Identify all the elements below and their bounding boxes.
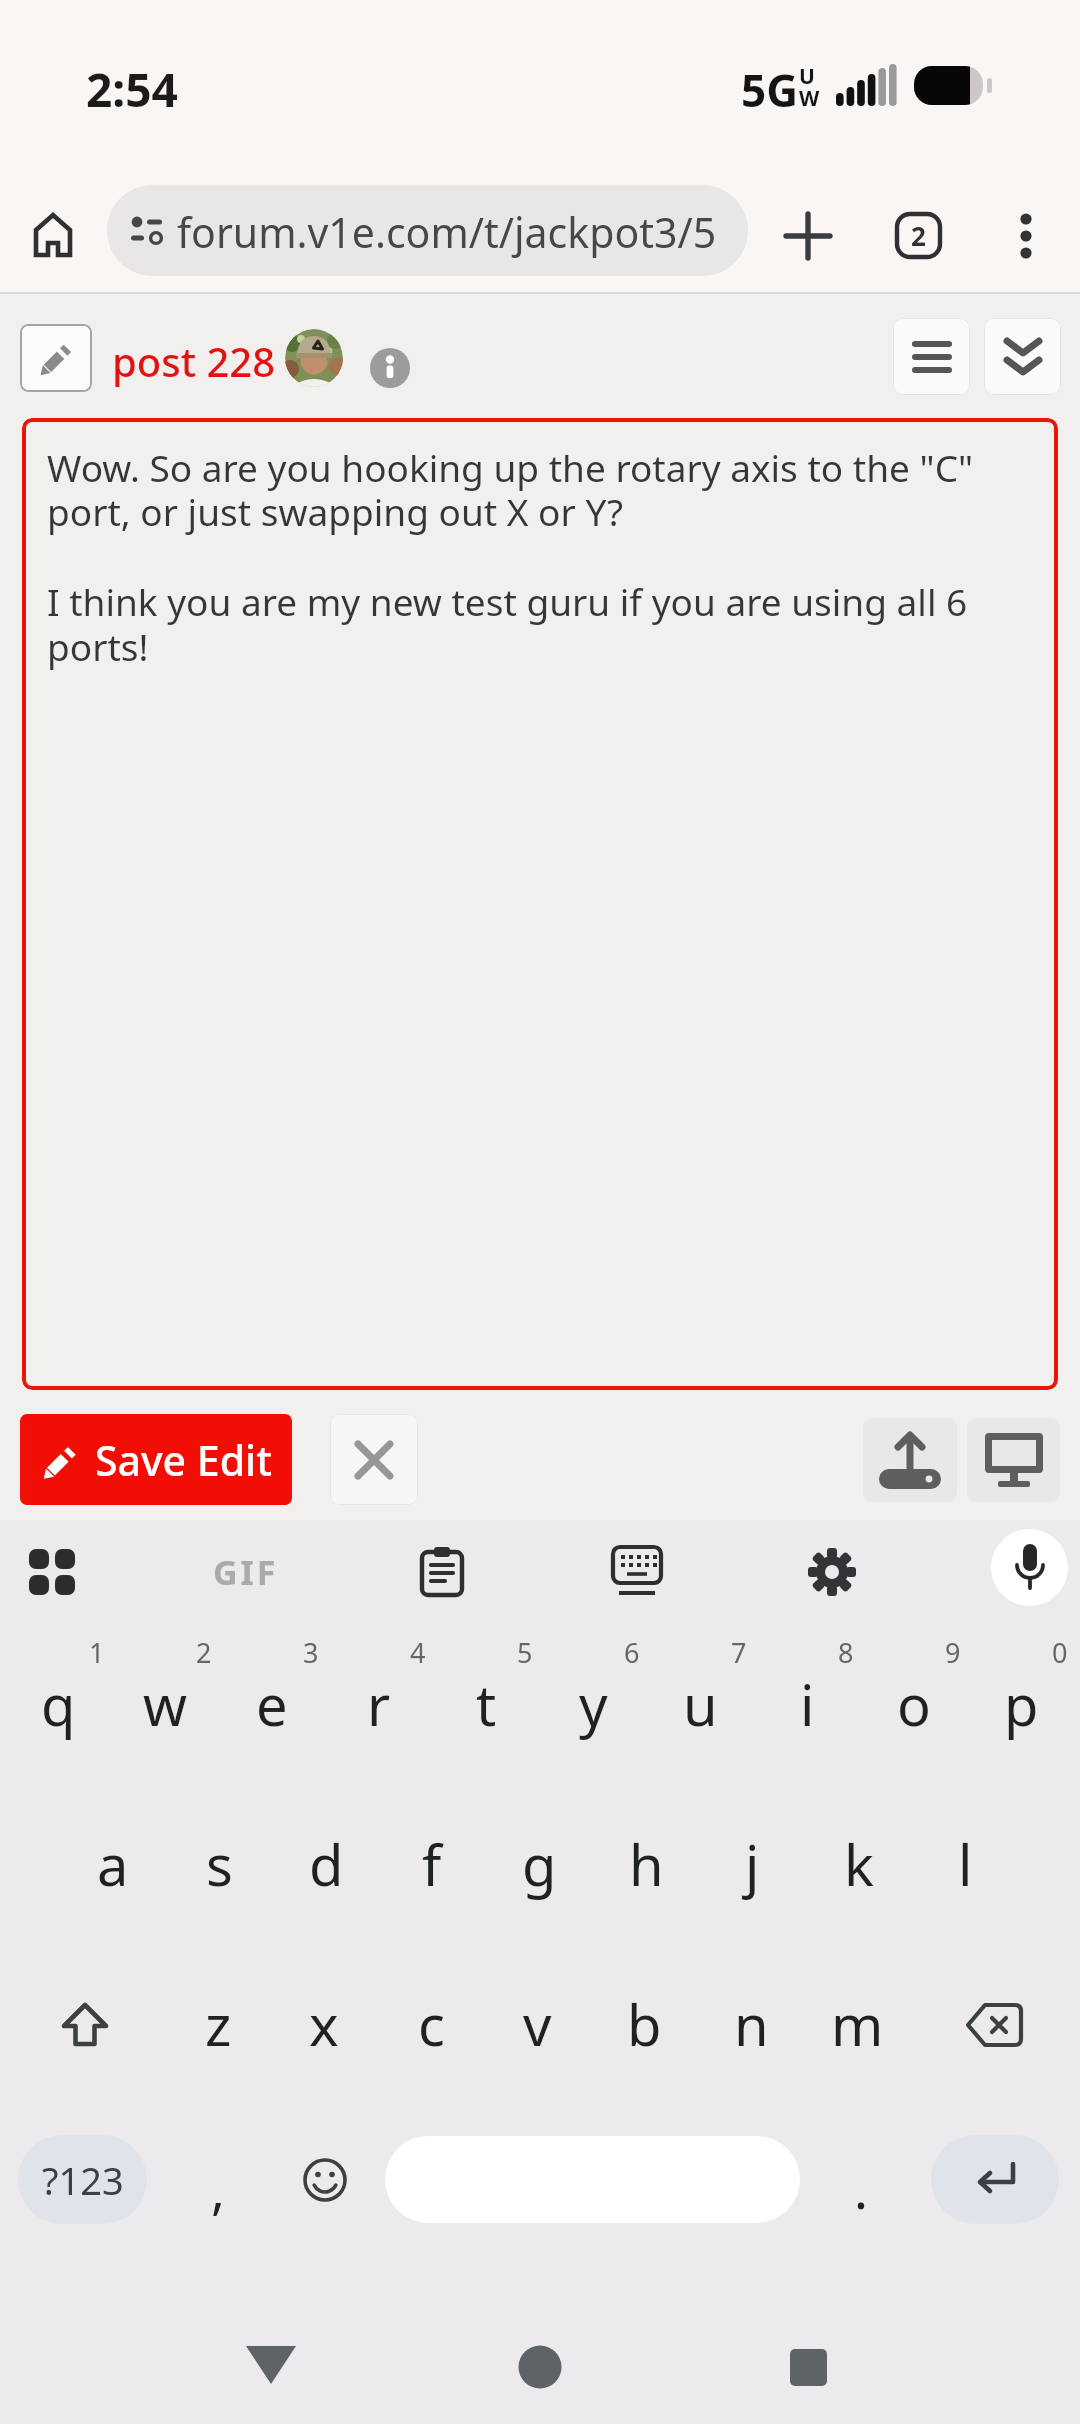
staticText: s bbox=[206, 1826, 233, 1902]
button[interactable]: h bbox=[592, 1808, 700, 1920]
button[interactable]: v bbox=[483, 1968, 591, 2080]
button[interactable]: o bbox=[860, 1648, 968, 1760]
button[interactable]: b bbox=[590, 1968, 698, 2080]
button[interactable]: l bbox=[911, 1808, 1019, 1920]
button[interactable] bbox=[784, 212, 832, 260]
staticText: t bbox=[476, 1666, 497, 1742]
button[interactable] bbox=[946, 1982, 1042, 2068]
button[interactable]: q bbox=[4, 1648, 112, 1760]
button[interactable]: Save Edit bbox=[20, 1414, 292, 1505]
button[interactable]: w bbox=[111, 1648, 219, 1760]
staticText: u bbox=[683, 1666, 718, 1742]
staticText: e bbox=[256, 1666, 288, 1742]
staticText: Wow. So are you hooking up the rotary ax… bbox=[47, 442, 974, 672]
button[interactable] bbox=[991, 1529, 1068, 1606]
staticText: k bbox=[844, 1826, 874, 1902]
staticText: 7 bbox=[731, 1634, 747, 1671]
button[interactable] bbox=[518, 2345, 562, 2389]
staticText: 8 bbox=[838, 1634, 854, 1671]
button[interactable] bbox=[863, 1418, 957, 1502]
staticText: 2 bbox=[911, 218, 926, 253]
button[interactable] bbox=[20, 324, 92, 392]
staticText: w bbox=[143, 1666, 188, 1742]
staticText: p bbox=[1004, 1666, 1039, 1742]
button[interactable]: t bbox=[432, 1648, 540, 1760]
staticText: 3 bbox=[303, 1634, 319, 1671]
button[interactable] bbox=[385, 2136, 800, 2223]
button[interactable]: 2 bbox=[895, 212, 942, 259]
staticText: q bbox=[41, 1666, 76, 1742]
staticText: , bbox=[211, 2153, 225, 2224]
staticText: m bbox=[831, 1986, 884, 2062]
button[interactable]: forum.v1e.com/t/jackpot3/5 bbox=[107, 185, 748, 276]
button[interactable]: n bbox=[697, 1968, 805, 2080]
button[interactable] bbox=[967, 1418, 1060, 1502]
button[interactable]: f bbox=[378, 1808, 486, 1920]
staticText: c bbox=[418, 1986, 445, 2062]
button[interactable]: c bbox=[377, 1968, 485, 2080]
staticText: 2:54 bbox=[86, 58, 178, 121]
staticText: . bbox=[854, 2153, 868, 2224]
button[interactable]: g bbox=[485, 1808, 593, 1920]
button[interactable] bbox=[285, 329, 343, 387]
staticText: Save Edit bbox=[95, 1432, 272, 1488]
button[interactable] bbox=[330, 1414, 418, 1505]
button[interactable]: s bbox=[165, 1808, 273, 1920]
staticText: x bbox=[309, 1986, 339, 2062]
staticText: 5 bbox=[517, 1634, 533, 1671]
staticText: 5G bbox=[741, 60, 799, 120]
button[interactable]: e bbox=[218, 1648, 326, 1760]
button[interactable] bbox=[370, 348, 410, 388]
button[interactable]: GIF bbox=[196, 1530, 296, 1614]
staticText: 0 bbox=[1052, 1634, 1068, 1671]
button[interactable] bbox=[790, 1528, 874, 1616]
staticText: l bbox=[958, 1826, 973, 1902]
button[interactable]: p bbox=[967, 1648, 1075, 1760]
staticText: GIF bbox=[213, 1549, 279, 1595]
button[interactable]: k bbox=[805, 1808, 913, 1920]
button[interactable]: x bbox=[270, 1968, 378, 2080]
staticText: W bbox=[799, 84, 820, 113]
staticText: n bbox=[734, 1986, 769, 2062]
button[interactable]: d bbox=[272, 1808, 380, 1920]
staticText: b bbox=[627, 1986, 662, 2062]
button[interactable] bbox=[246, 2344, 296, 2388]
button[interactable] bbox=[400, 1528, 484, 1616]
button[interactable]: a bbox=[59, 1808, 167, 1920]
staticText: ?123 bbox=[42, 2154, 124, 2206]
button[interactable]: Wow. So are you hooking up the rotary ax… bbox=[22, 418, 1058, 1390]
staticText: a bbox=[97, 1826, 129, 1902]
staticText: 9 bbox=[945, 1634, 961, 1671]
button[interactable] bbox=[285, 2140, 365, 2220]
button[interactable]: m bbox=[803, 1968, 911, 2080]
button[interactable] bbox=[893, 318, 970, 395]
button[interactable] bbox=[790, 2349, 828, 2387]
button[interactable] bbox=[40, 1980, 130, 2070]
staticText: v bbox=[523, 1986, 552, 2062]
button[interactable]: y bbox=[539, 1648, 647, 1760]
staticText: j bbox=[745, 1826, 760, 1902]
button[interactable]: i bbox=[753, 1648, 861, 1760]
button[interactable]: ?123 bbox=[18, 2135, 147, 2224]
button[interactable] bbox=[31, 211, 75, 259]
button[interactable]: j bbox=[698, 1808, 806, 1920]
staticText: U bbox=[799, 62, 815, 91]
staticText: 6 bbox=[624, 1634, 640, 1671]
button[interactable] bbox=[1004, 212, 1048, 260]
staticText: 1 bbox=[89, 1634, 105, 1671]
staticText: post 228 bbox=[112, 334, 276, 388]
staticText: 2 bbox=[196, 1634, 212, 1671]
button[interactable]: z bbox=[164, 1968, 272, 2080]
button[interactable] bbox=[984, 318, 1061, 395]
button[interactable] bbox=[595, 1528, 679, 1616]
button[interactable] bbox=[10, 1530, 94, 1614]
button[interactable]: r bbox=[325, 1648, 433, 1760]
button[interactable]: u bbox=[646, 1648, 754, 1760]
staticText: d bbox=[309, 1826, 344, 1902]
staticText: z bbox=[205, 1986, 232, 2062]
button[interactable] bbox=[931, 2135, 1059, 2224]
staticText: o bbox=[897, 1666, 931, 1742]
staticText: f bbox=[422, 1826, 442, 1902]
staticText: r bbox=[367, 1666, 391, 1742]
staticText: 4 bbox=[410, 1634, 426, 1671]
